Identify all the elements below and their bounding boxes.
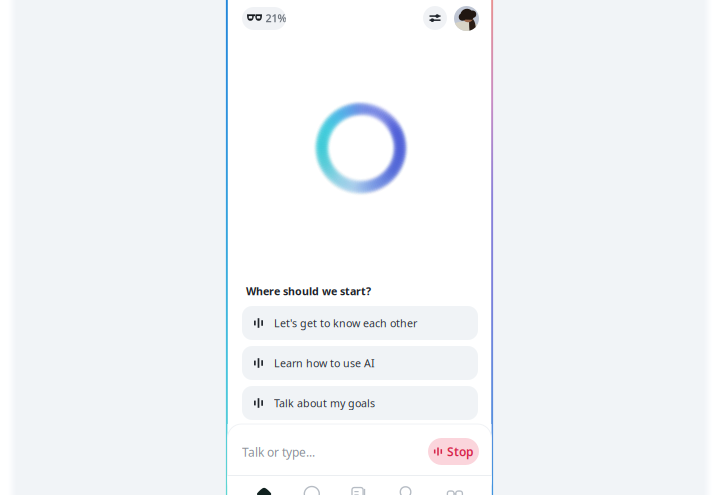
button[interactable]: Talk about my goals	[242, 386, 478, 420]
staticText: Talk about my goals	[274, 396, 375, 410]
staticText: Learn how to use AI	[274, 356, 375, 370]
button[interactable]: Settings	[423, 6, 447, 30]
button[interactable]: Stop	[428, 438, 479, 465]
button[interactable]: Learn how to use AI	[242, 346, 478, 380]
staticText: Talk or type...	[242, 444, 315, 460]
button[interactable]: Discover	[288, 476, 336, 495]
staticText: Where should we start?	[246, 284, 371, 298]
staticText: Let's get to know each other	[274, 316, 417, 330]
button[interactable]: Glasses	[431, 476, 479, 495]
button[interactable]: Glasses battery 21 percent	[242, 7, 286, 30]
button[interactable]: Home	[240, 476, 288, 495]
staticText: 21%	[265, 11, 286, 25]
staticText: Stop	[447, 443, 474, 459]
button[interactable]: Let's get to know each other	[242, 306, 478, 340]
button[interactable]: Profile	[454, 6, 479, 31]
button[interactable]: Search	[383, 476, 431, 495]
button[interactable]: Journal	[336, 476, 383, 495]
